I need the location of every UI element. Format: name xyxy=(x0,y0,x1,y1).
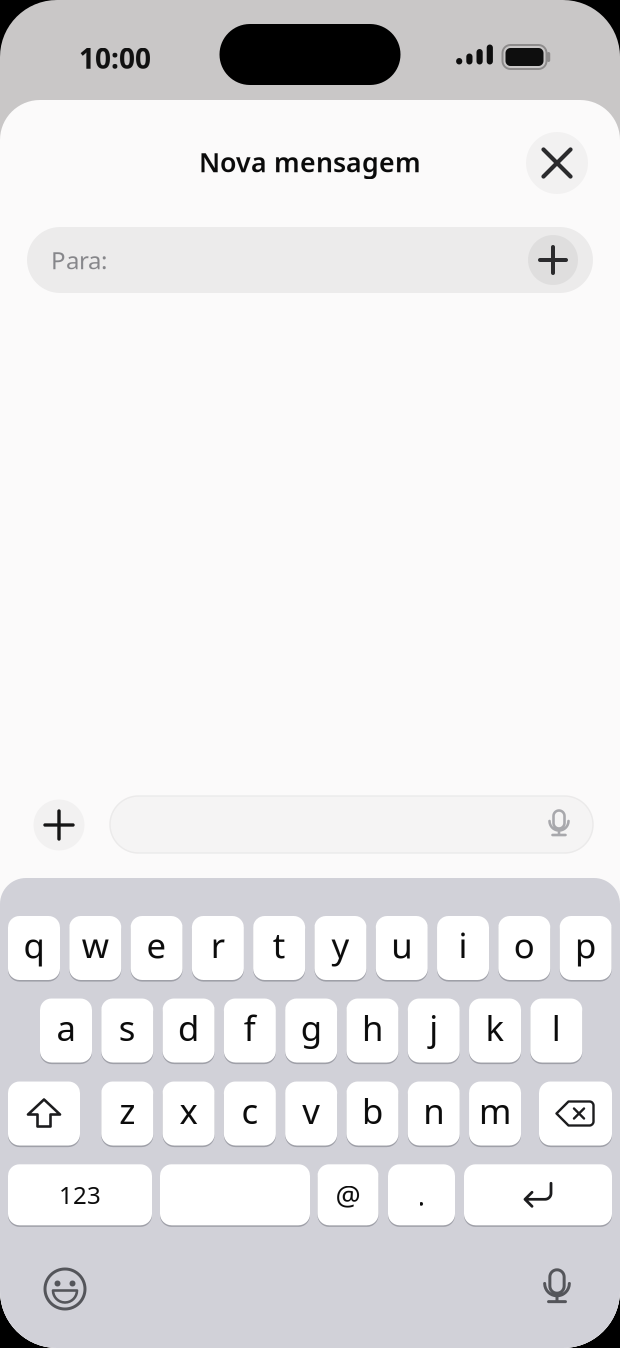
button[interactable]: k xyxy=(469,996,521,1064)
button[interactable]: t xyxy=(253,914,305,982)
button[interactable]: v xyxy=(285,1079,337,1147)
staticText: m xyxy=(479,1087,511,1133)
button[interactable]: r xyxy=(192,914,244,982)
staticText: e xyxy=(147,922,167,968)
button[interactable]: Espaço xyxy=(160,1162,310,1227)
button[interactable]: o xyxy=(498,914,550,982)
button[interactable]: Fechar xyxy=(526,132,588,194)
button[interactable]: l xyxy=(530,996,582,1064)
button[interactable]: Shift xyxy=(8,1079,80,1147)
staticText: j xyxy=(429,1004,438,1050)
button[interactable]: g xyxy=(285,996,337,1064)
staticText: b xyxy=(362,1087,383,1133)
button[interactable]: Ditar xyxy=(534,1265,580,1311)
button[interactable]: Apagar xyxy=(539,1079,612,1147)
button[interactable]: d xyxy=(163,996,215,1064)
staticText: v xyxy=(302,1087,320,1133)
staticText: w xyxy=(82,922,109,968)
button[interactable]: y xyxy=(314,914,366,982)
button[interactable]: . xyxy=(388,1162,455,1227)
button[interactable]: 123 xyxy=(8,1162,152,1227)
staticText: t xyxy=(273,922,286,968)
staticText: Para: xyxy=(51,244,107,276)
staticText: h xyxy=(362,1004,383,1050)
staticText: n xyxy=(423,1087,444,1133)
staticText: p xyxy=(575,922,596,968)
staticText: l xyxy=(552,1004,561,1050)
button[interactable]: Mensagem xyxy=(110,796,593,853)
staticText: o xyxy=(514,922,535,968)
button[interactable]: p xyxy=(560,914,612,982)
staticText: z xyxy=(119,1087,135,1133)
staticText: . xyxy=(417,1176,425,1213)
button[interactable]: w xyxy=(69,914,121,982)
staticText: i xyxy=(458,922,467,968)
staticText: k xyxy=(485,1004,504,1050)
button[interactable]: @ xyxy=(317,1162,378,1227)
button[interactable]: u xyxy=(376,914,428,982)
staticText: 123 xyxy=(59,1179,101,1211)
staticText: @ xyxy=(335,1176,360,1213)
button[interactable]: j xyxy=(408,996,460,1064)
button[interactable]: Adicionar contato xyxy=(528,235,578,285)
button[interactable]: m xyxy=(469,1079,521,1147)
staticText: g xyxy=(301,1004,322,1050)
staticText: d xyxy=(178,1004,199,1050)
staticText: Nova mensagem xyxy=(199,144,421,180)
staticText: y xyxy=(331,922,349,968)
button[interactable]: Emoji xyxy=(42,1266,88,1312)
button[interactable]: z xyxy=(101,1079,153,1147)
button[interactable]: Retorno xyxy=(464,1162,612,1227)
staticText: c xyxy=(241,1087,258,1133)
button[interactable]: f xyxy=(224,996,276,1064)
button[interactable]: n xyxy=(408,1079,460,1147)
staticText: s xyxy=(119,1004,136,1050)
staticText: 10:00 xyxy=(79,39,151,77)
button[interactable]: c xyxy=(224,1079,276,1147)
staticText: u xyxy=(391,922,412,968)
staticText: r xyxy=(211,922,225,968)
button[interactable]: q xyxy=(8,914,60,982)
button[interactable]: Para: xyxy=(27,227,593,293)
button[interactable]: i xyxy=(437,914,489,982)
staticText: a xyxy=(56,1004,75,1050)
button[interactable]: Mais xyxy=(33,799,84,850)
staticText: q xyxy=(23,922,44,968)
staticText: x xyxy=(180,1087,198,1133)
button[interactable]: b xyxy=(346,1079,398,1147)
button[interactable]: e xyxy=(131,914,183,982)
button[interactable]: h xyxy=(346,996,398,1064)
button[interactable]: x xyxy=(163,1079,215,1147)
staticText: f xyxy=(244,1004,256,1050)
button[interactable]: a xyxy=(40,996,92,1064)
button[interactable]: s xyxy=(101,996,153,1064)
